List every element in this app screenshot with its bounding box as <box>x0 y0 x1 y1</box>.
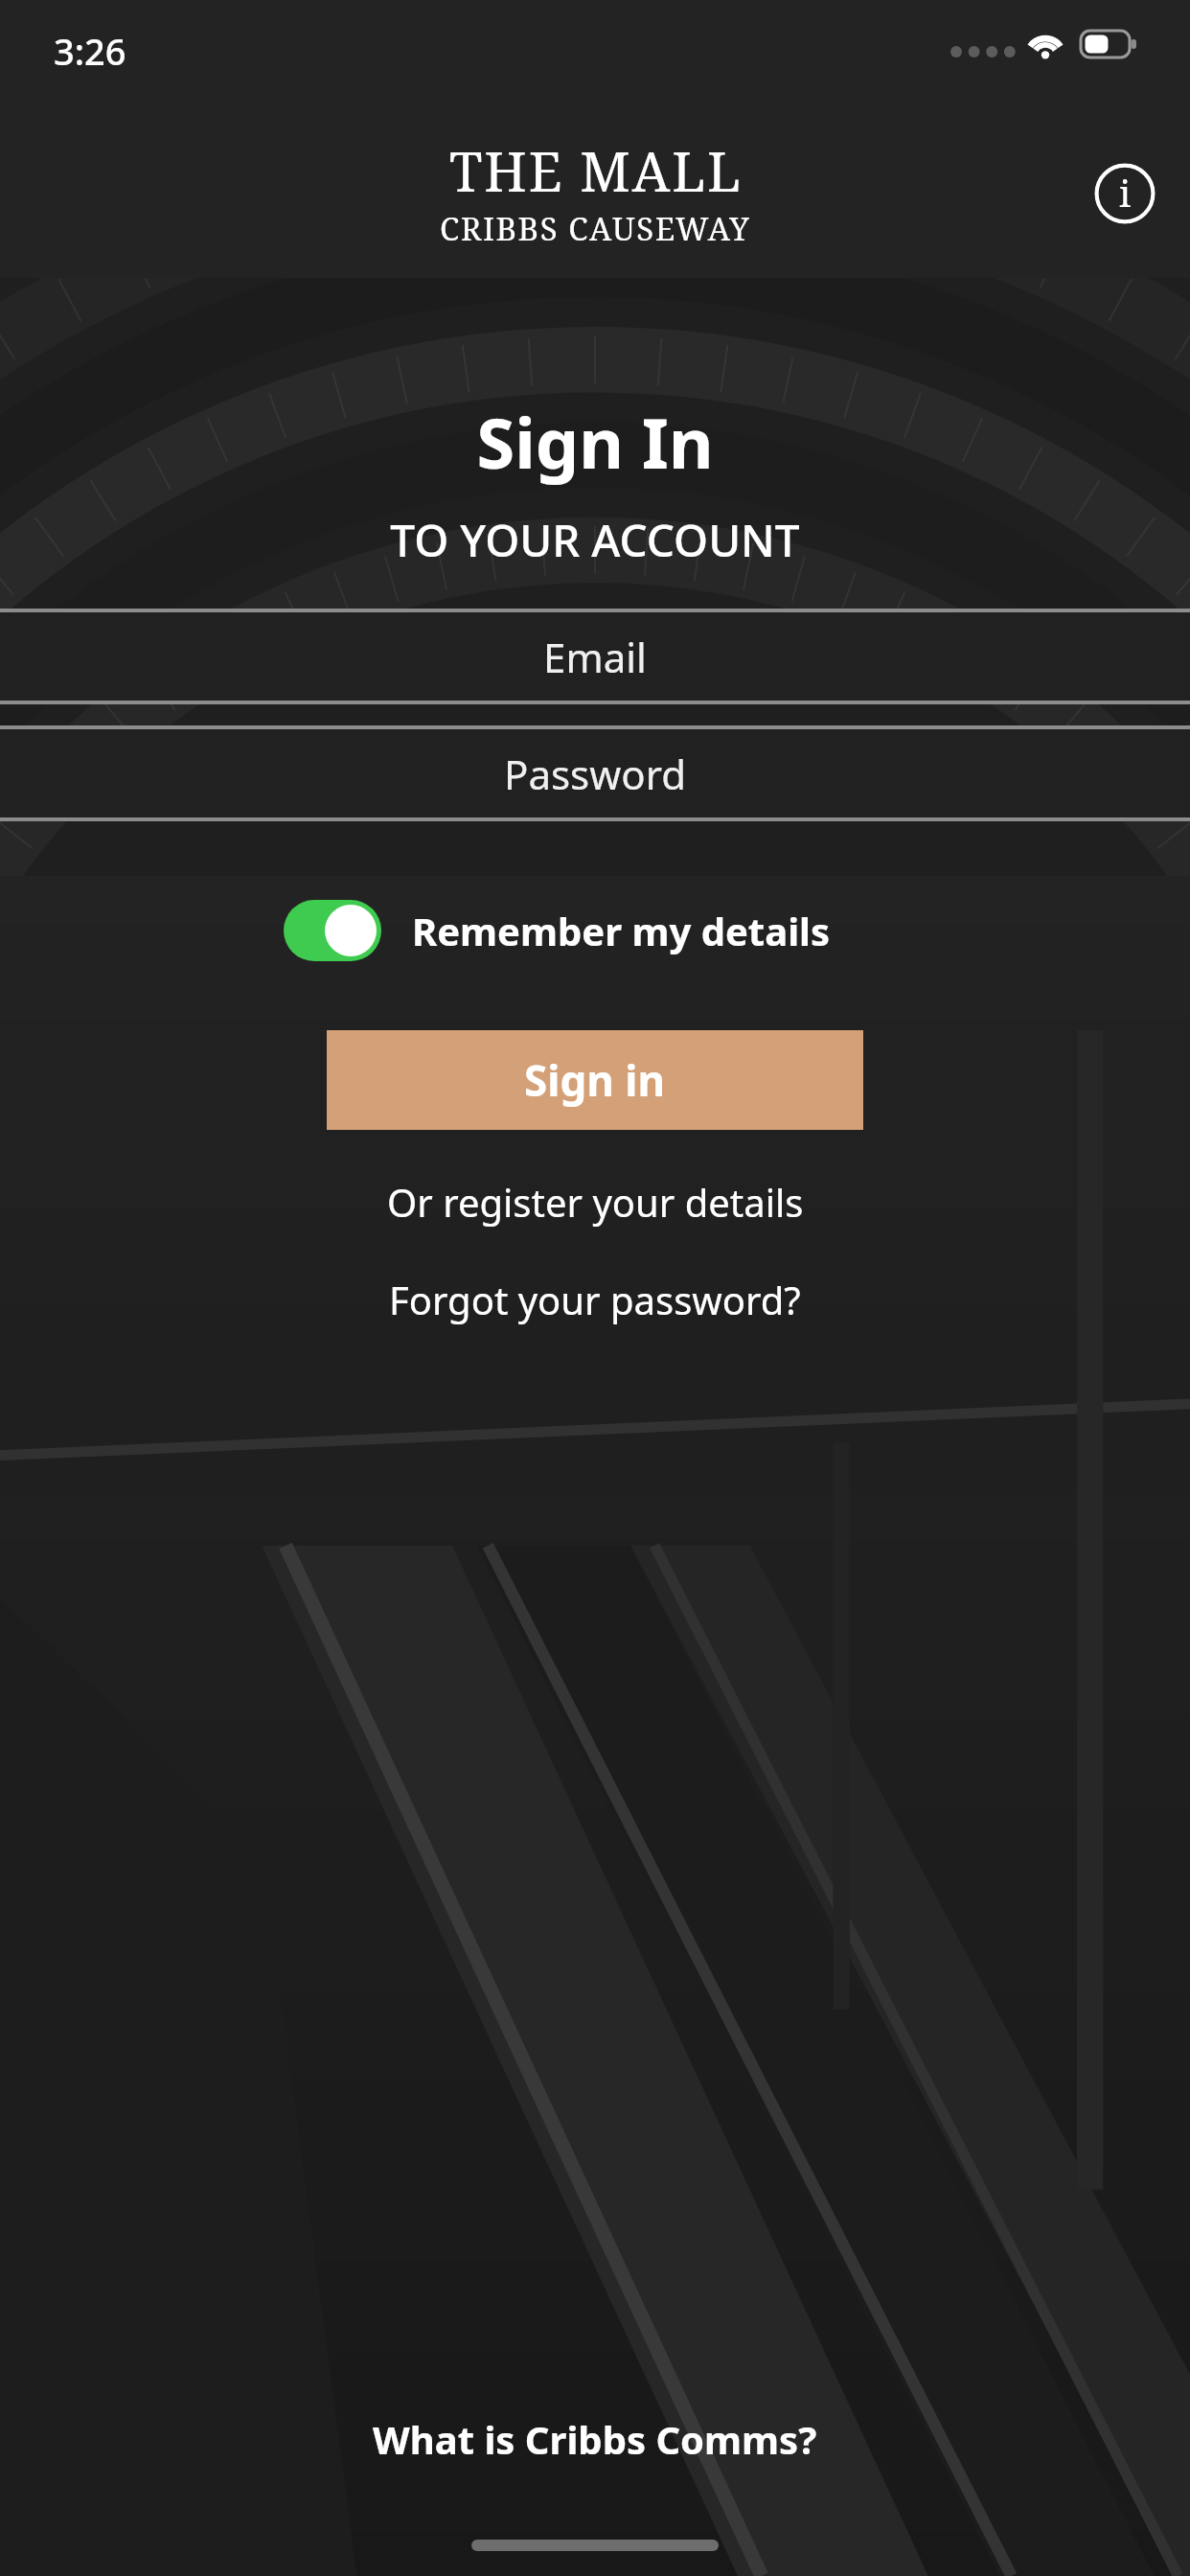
button[interactable]: Email <box>0 612 1190 701</box>
button[interactable]: Remember my details <box>284 900 831 961</box>
staticText: CRIBBS CAUSEWAY <box>440 207 751 250</box>
staticText: TO YOUR ACCOUNT <box>0 510 1190 570</box>
staticText: Or register your details <box>387 1176 804 1228</box>
button[interactable]: What is Cribbs Comms? <box>0 2402 1190 2476</box>
button[interactable]: Or register your details <box>0 1166 1190 1237</box>
staticText: Sign In <box>0 395 1190 489</box>
staticText: What is Cribbs Comms? <box>373 2413 817 2465</box>
button[interactable]: Forgot your password? <box>0 1264 1190 1335</box>
staticText: Password <box>504 747 686 801</box>
staticText: Remember my details <box>412 905 831 956</box>
staticText: Sign in <box>524 1051 666 1109</box>
staticText: THE MALL <box>449 134 743 207</box>
staticText: Forgot your password? <box>389 1274 801 1325</box>
button[interactable]: Sign in <box>327 1030 863 1130</box>
button[interactable]: Password <box>0 729 1190 817</box>
staticText: 3:26 <box>54 26 126 76</box>
staticText: i <box>1119 168 1132 218</box>
staticText: Email <box>543 630 647 684</box>
button[interactable]: Information <box>1094 163 1156 224</box>
